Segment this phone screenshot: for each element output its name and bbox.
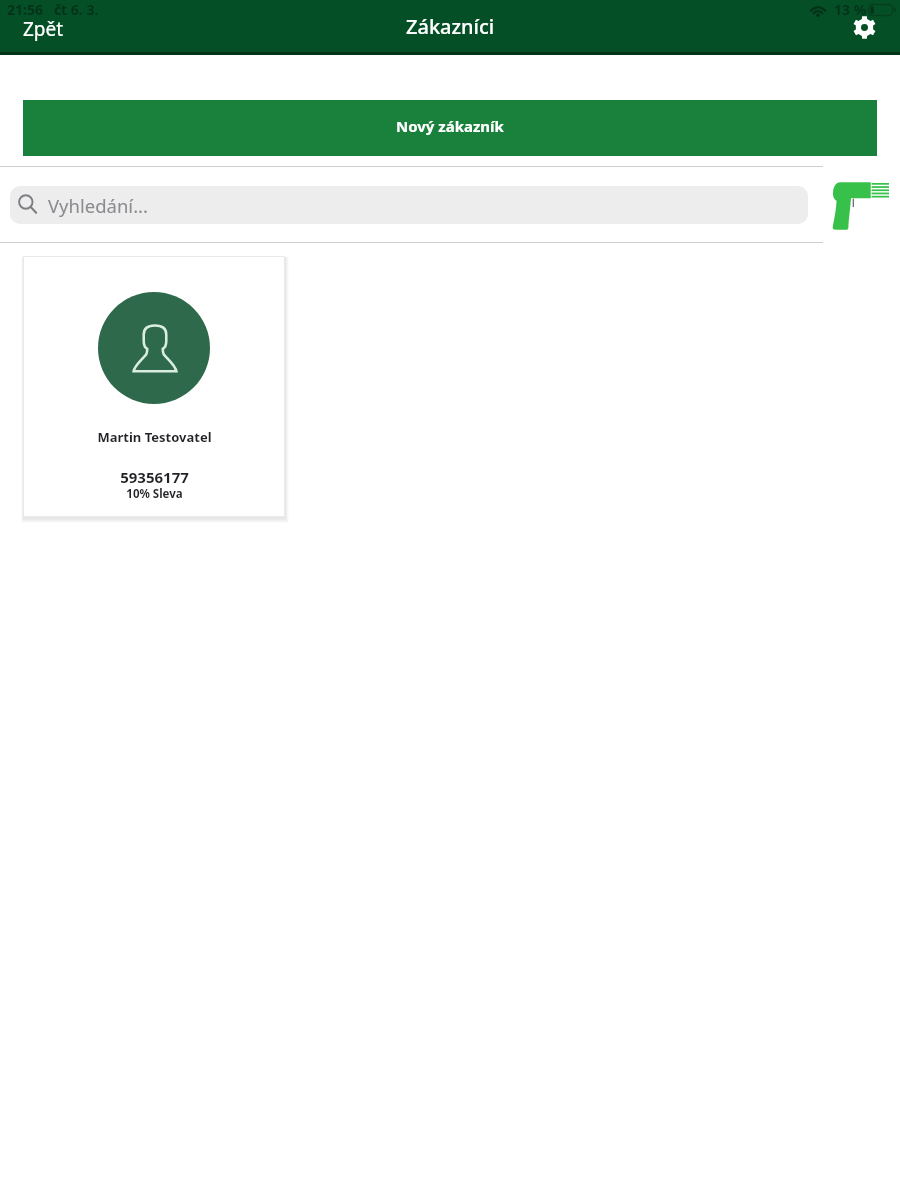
button[interactable]: Vyhledání... (10, 186, 808, 224)
staticText: Nový zákazník (396, 116, 504, 136)
staticText: Zpět (23, 16, 64, 42)
staticText: Vyhledání... (48, 193, 149, 218)
button[interactable]: Nový zákazník (23, 100, 877, 156)
button[interactable]: Martin Testovatel (24, 257, 284, 516)
button[interactable]: Scan barcode (824, 175, 890, 235)
staticText: 13 % (834, 0, 867, 19)
staticText: 10% Sleva (126, 486, 183, 502)
button[interactable]: Settings (842, 5, 886, 49)
staticText: Martin Testovatel (97, 428, 212, 446)
staticText: 59356177 (120, 467, 189, 487)
staticText: Zákazníci (406, 13, 495, 40)
staticText: 21:56 čt 6. 3. (7, 0, 99, 19)
button[interactable]: Zpět (23, 16, 64, 42)
